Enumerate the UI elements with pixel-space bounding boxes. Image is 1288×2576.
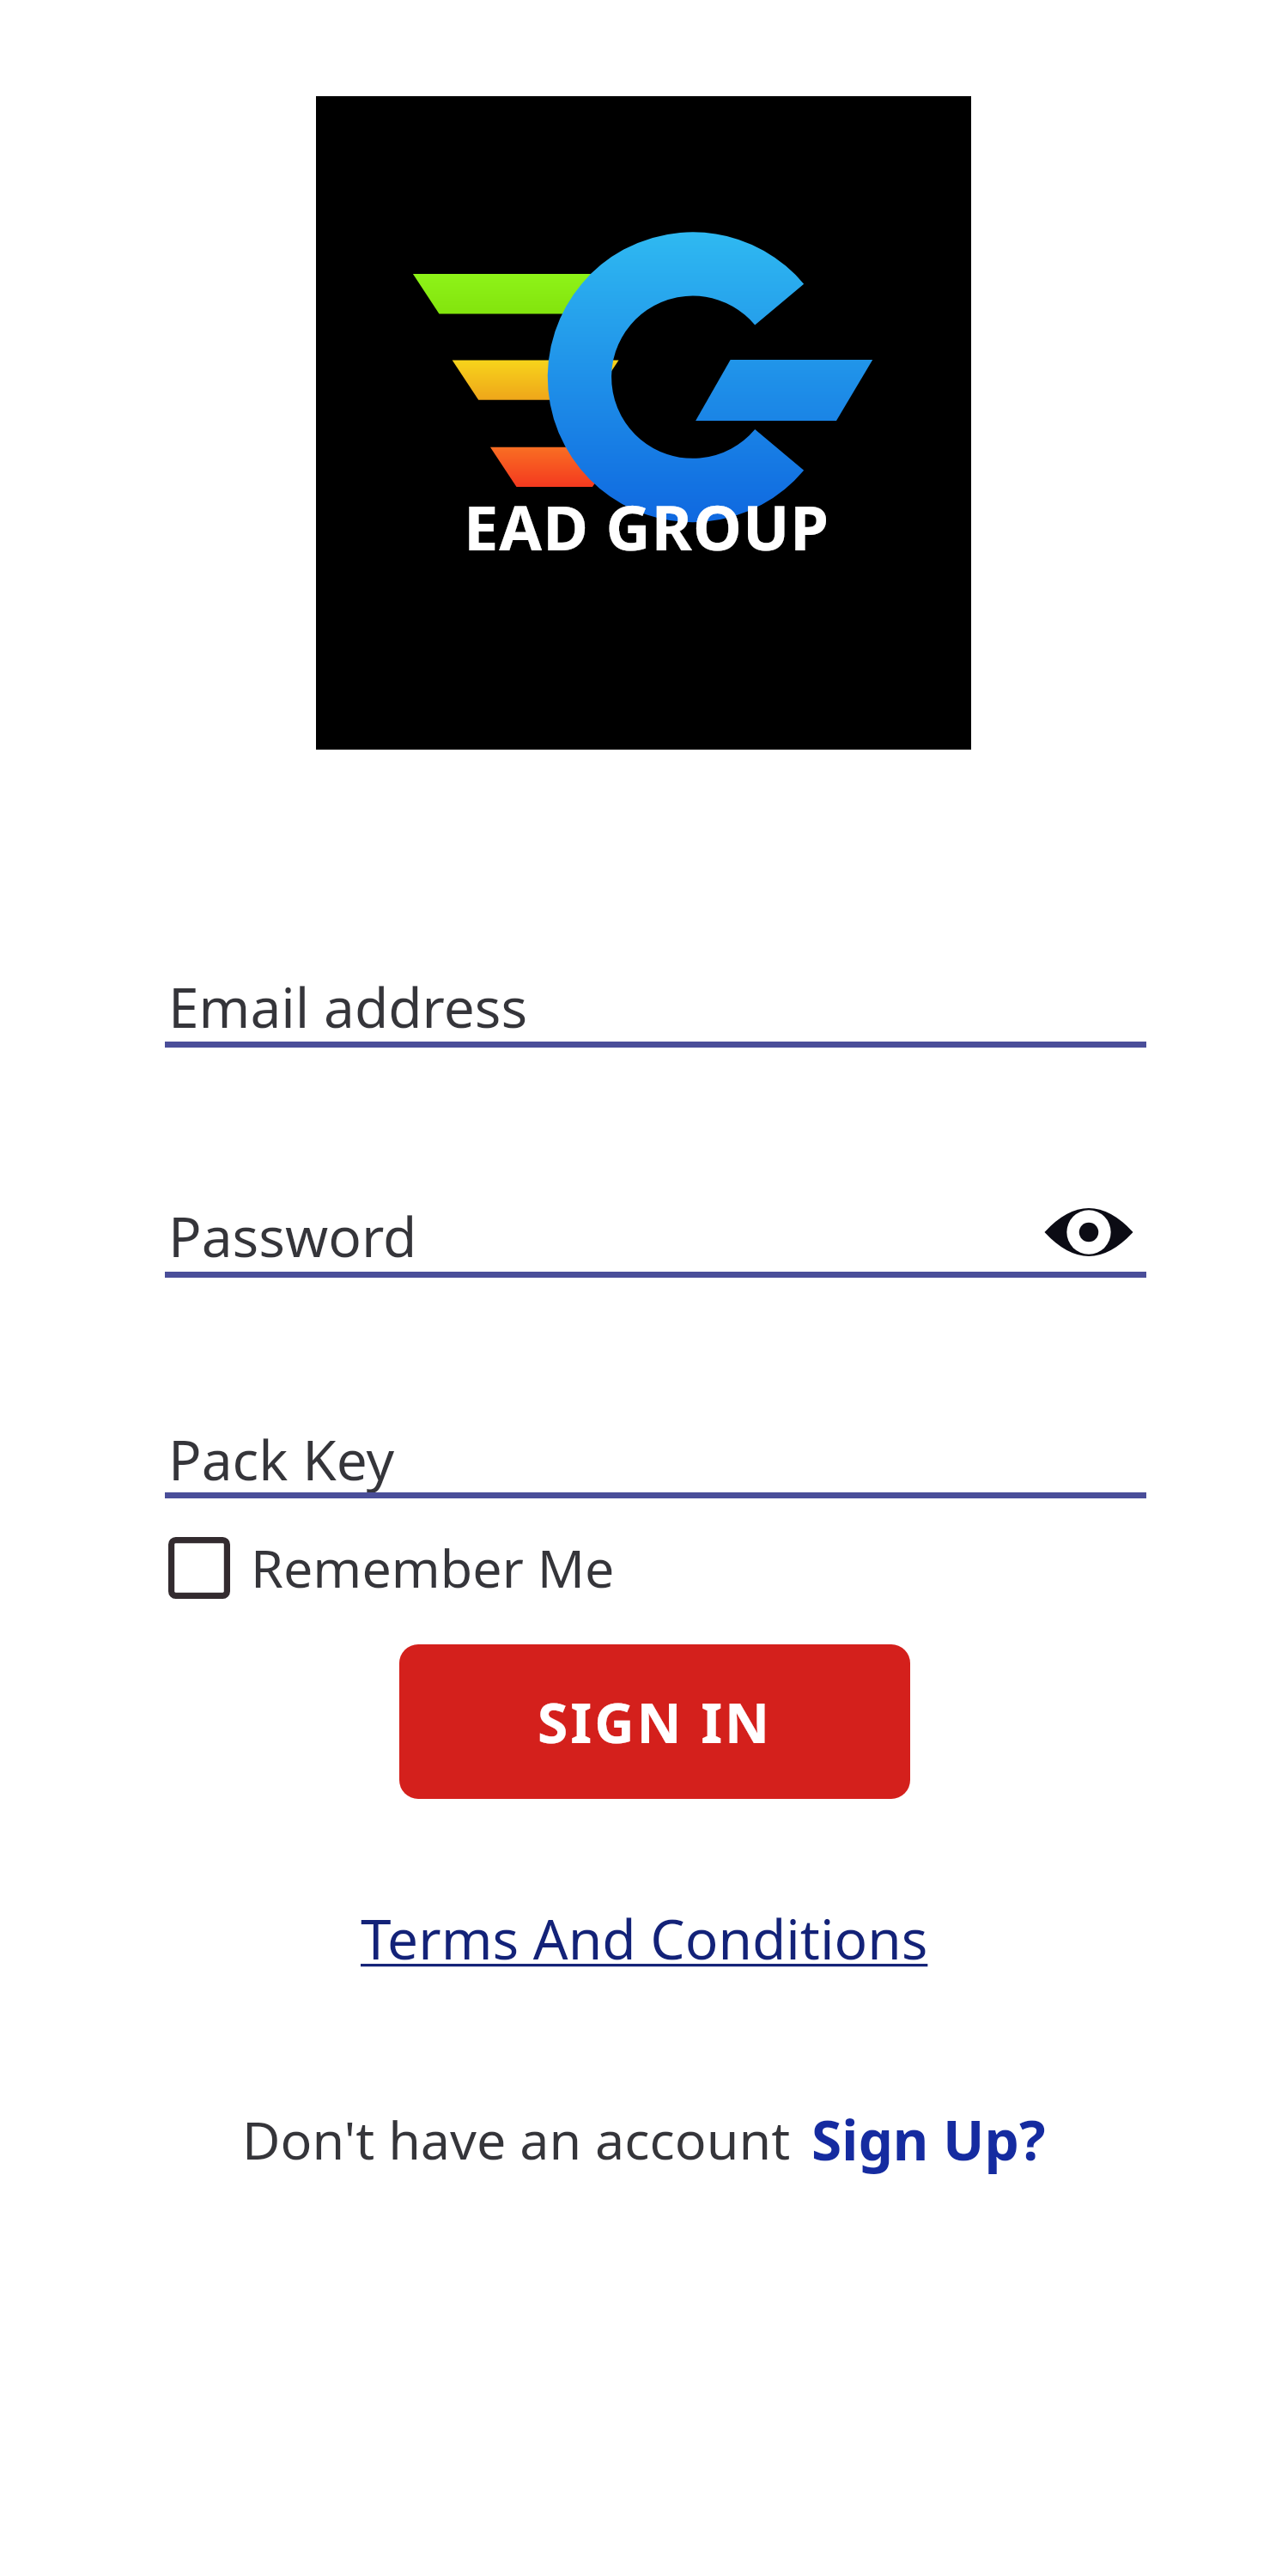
button[interactable]: Sign Up? [811, 2102, 1046, 2177]
staticText: Password [168, 1199, 417, 1273]
staticText: EAD GROUP [464, 484, 830, 568]
staticText: Email address [168, 969, 528, 1044]
button[interactable]: Terms And Conditions [355, 1896, 933, 1981]
staticText: Terms And Conditions [361, 1901, 928, 1976]
button[interactable]: Show password [1041, 1194, 1137, 1271]
staticText: Remember Me [251, 1532, 615, 1603]
staticText: Pack Key [168, 1422, 395, 1497]
staticText: SIGN IN [538, 1685, 773, 1759]
staticText: Don't have an account [242, 2104, 791, 2175]
staticText: Sign Up? [811, 2102, 1046, 2177]
button[interactable]: SIGN IN [399, 1644, 910, 1799]
button[interactable]: Remember Me [168, 1532, 615, 1603]
